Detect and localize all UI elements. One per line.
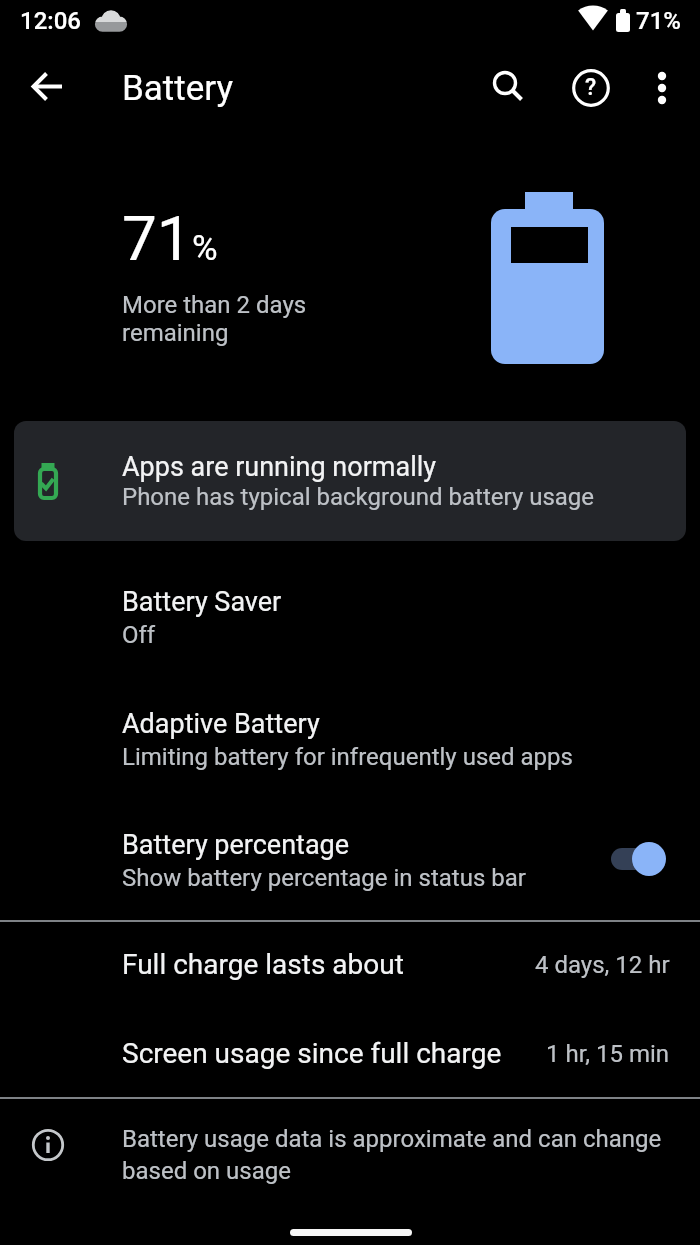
staticText: Limiting battery for infrequently used a… xyxy=(122,743,573,771)
staticText: 71 xyxy=(122,202,192,275)
staticText: Show battery percentage in status bar xyxy=(122,864,526,892)
staticText: 71% xyxy=(636,7,681,35)
button[interactable]: Battery percentage xyxy=(0,800,700,920)
staticText: 12:06 xyxy=(20,7,81,35)
staticText: Apps are running normally xyxy=(122,451,437,483)
button[interactable]: Adaptive Battery xyxy=(0,679,700,799)
button[interactable]: Apps are running normally xyxy=(14,421,686,541)
staticText: Full charge lasts about xyxy=(122,948,404,981)
button[interactable] xyxy=(478,58,538,118)
staticText: Battery usage data is approximate and ca… xyxy=(122,1125,662,1185)
staticText: 4 days, 12 hr xyxy=(535,951,670,979)
staticText: Battery Saver xyxy=(122,586,282,618)
button[interactable]: Full charge lasts about xyxy=(0,920,700,1009)
button[interactable]: ? xyxy=(561,58,621,118)
staticText: % xyxy=(192,228,218,269)
staticText: Battery xyxy=(122,68,234,109)
staticText: 1 hr, 15 min xyxy=(546,1040,670,1068)
staticText: Off xyxy=(122,621,156,649)
staticText: Adaptive Battery xyxy=(122,708,320,740)
staticText: Screen usage since full charge xyxy=(122,1037,502,1070)
button[interactable]: Screen usage since full charge xyxy=(0,1009,700,1098)
staticText: More than 2 days remaining xyxy=(122,291,307,347)
staticText: Phone has typical background battery usa… xyxy=(122,483,595,511)
staticText: Battery percentage xyxy=(122,829,350,861)
button[interactable] xyxy=(605,836,669,880)
button[interactable] xyxy=(632,58,692,118)
button[interactable]: Battery Saver xyxy=(0,557,700,677)
button[interactable] xyxy=(18,58,78,118)
staticText: ? xyxy=(585,74,597,101)
